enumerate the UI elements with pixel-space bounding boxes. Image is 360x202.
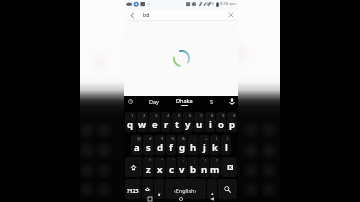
staticText: : [183, 158, 185, 164]
staticText: o [218, 118, 224, 131]
button[interactable]: Back [207, 195, 217, 202]
staticText: l [225, 141, 228, 154]
button[interactable]: Search [218, 179, 237, 199]
staticText: @ [137, 136, 141, 142]
staticText: s [146, 141, 151, 154]
button[interactable]: 4 [161, 112, 171, 132]
staticText: v [179, 163, 185, 176]
staticText: 1 [131, 113, 134, 119]
button[interactable]: * [143, 157, 154, 177]
button[interactable]: 5 [172, 112, 182, 132]
button[interactable]: - [188, 135, 198, 155]
staticText: 6 [189, 113, 192, 119]
staticText: 2 [143, 113, 146, 119]
staticText: p [229, 118, 236, 131]
staticText: u [196, 118, 203, 131]
staticText: , [158, 185, 161, 198]
button[interactable]: ) [221, 135, 231, 155]
staticText: $ [161, 136, 164, 142]
button[interactable]: ?123 [125, 179, 141, 199]
staticText: g [179, 141, 186, 154]
button[interactable]: : [177, 157, 187, 177]
staticText: b [190, 163, 197, 176]
staticText: % [171, 136, 175, 142]
button[interactable]: Recent [126, 97, 135, 106]
staticText: ' [173, 158, 174, 164]
staticText: m [210, 163, 220, 176]
staticText: e [152, 118, 158, 131]
staticText: ‹English› [174, 187, 197, 194]
button[interactable]: Shift [125, 157, 142, 177]
staticText: j [203, 141, 206, 154]
button[interactable]: 1 [125, 112, 136, 132]
staticText: f [169, 141, 173, 154]
button[interactable]: 6 [183, 112, 193, 132]
staticText: ; [194, 158, 196, 164]
staticText: - [194, 136, 196, 142]
button[interactable]: . [207, 179, 217, 199]
button[interactable]: , [154, 179, 164, 199]
button[interactable]: & [177, 135, 187, 155]
staticText: y [185, 118, 191, 131]
staticText: w [138, 118, 147, 131]
button[interactable]: Backspace [221, 157, 237, 177]
button[interactable]: Emoji [142, 179, 153, 199]
button[interactable]: 8 [205, 112, 215, 132]
staticText: h [190, 141, 197, 154]
staticText: + [205, 136, 208, 142]
button[interactable]: ! [199, 157, 209, 177]
staticText: 8:58 pm [220, 1, 236, 7]
staticText: 0 [233, 113, 236, 119]
staticText: ) [227, 136, 229, 142]
button[interactable]: 3 [149, 112, 160, 132]
button[interactable]: + [199, 135, 209, 155]
button[interactable]: Voice input [227, 97, 236, 106]
button[interactable]: Recents [145, 195, 155, 202]
button[interactable]: Back [128, 10, 137, 20]
button[interactable]: Clear [224, 10, 237, 20]
button[interactable]: ' [166, 157, 176, 177]
button[interactable]: # [143, 135, 154, 155]
staticText: a [134, 141, 140, 154]
button[interactable]: ‹English› [165, 179, 206, 199]
button[interactable]: ? [210, 157, 220, 177]
staticText: 3 [155, 113, 158, 119]
staticText: i [209, 118, 212, 131]
button[interactable]: 2 [137, 112, 148, 132]
staticText: 4 [167, 113, 170, 119]
staticText: z [146, 163, 151, 176]
button[interactable]: @ [131, 135, 142, 155]
staticText: ?123 [127, 187, 139, 194]
staticText: . [211, 185, 214, 198]
button[interactable]: 9 [216, 112, 226, 132]
staticText: 5 [178, 113, 181, 119]
staticText: ? [216, 158, 218, 164]
staticText: r [164, 118, 169, 131]
staticText: 8 [211, 113, 214, 119]
staticText: * [149, 158, 152, 164]
staticText: S [210, 98, 214, 105]
staticText: # [149, 136, 152, 142]
staticText: bd [143, 11, 150, 18]
staticText: c [169, 163, 174, 176]
button[interactable]: 0 [227, 112, 237, 132]
staticText: n [201, 163, 208, 176]
staticText: ! [205, 158, 207, 164]
staticText: 50% [206, 1, 215, 7]
button[interactable]: " [155, 157, 165, 177]
button[interactable]: ( [210, 135, 220, 155]
button[interactable]: 7 [194, 112, 204, 132]
staticText: Dhaka [176, 97, 193, 104]
button[interactable]: Home [176, 195, 186, 202]
staticText: Day [149, 98, 159, 105]
staticText: k [212, 141, 218, 154]
staticText: " [161, 158, 163, 164]
staticText: 7 [200, 113, 203, 119]
button[interactable]: ; [188, 157, 198, 177]
button[interactable]: % [166, 135, 176, 155]
staticText: d [157, 141, 164, 154]
staticText: q [127, 118, 134, 131]
button[interactable]: $ [155, 135, 165, 155]
staticText: 9 [222, 113, 225, 119]
staticText: t [175, 118, 180, 131]
